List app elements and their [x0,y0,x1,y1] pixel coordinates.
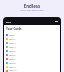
staticText: Item 5 [9,50,16,53]
staticText: Item 1 [9,34,16,37]
staticText: Item 2 [9,38,16,41]
staticText: 9:41 [6,20,11,23]
button[interactable]: Item 8 [4,61,60,65]
button[interactable]: Item 6 [4,53,60,57]
button[interactable]: Item 2 [4,37,60,41]
staticText: Item 10 [9,69,17,72]
staticText: Item 7 [9,58,16,61]
button[interactable]: Item 9 [4,65,60,69]
button[interactable]: Item 4 [4,45,60,49]
staticText: scroll that never ends [0,9,64,12]
button[interactable]: Item 10 [4,69,60,72]
button[interactable]: Item 1 [4,33,60,37]
staticText: Item 3 [9,42,16,45]
button[interactable]: Item 3 [4,41,60,45]
button[interactable]: Item 5 [4,49,60,53]
staticText: Item 8 [9,62,16,65]
staticText: Item 6 [9,54,16,57]
staticText: Item 4 [9,46,16,49]
staticText: Endless [0,3,64,9]
button[interactable]: Item 7 [4,57,60,61]
staticText: Your Cards [6,27,22,31]
staticText: Item 9 [9,66,16,69]
